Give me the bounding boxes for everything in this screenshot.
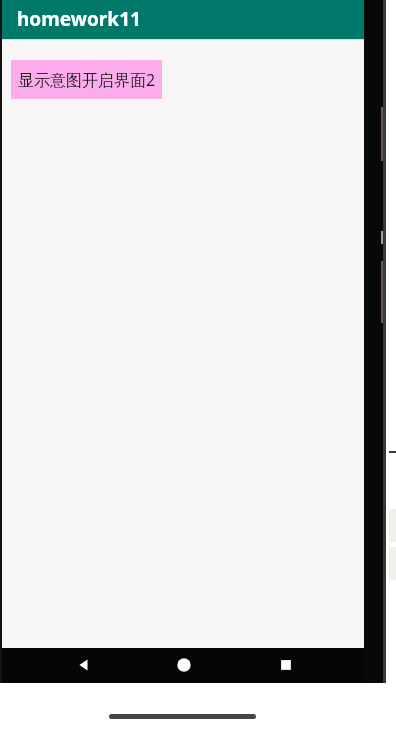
staticText: homework11 xyxy=(17,6,141,32)
staticText: 显示意图开启界面2 xyxy=(18,69,156,91)
button[interactable]: Recent apps xyxy=(265,648,307,682)
button[interactable]: homework11 xyxy=(2,0,364,39)
button[interactable]: Back xyxy=(63,648,105,682)
button[interactable]: Home xyxy=(163,648,205,682)
button[interactable]: 显示意图开启界面2 xyxy=(11,60,162,99)
